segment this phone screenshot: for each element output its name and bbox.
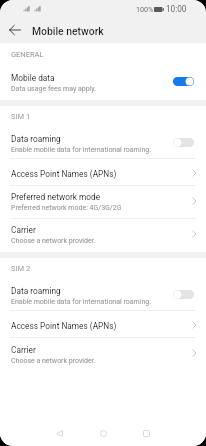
staticText: GENERAL [11, 50, 44, 59]
staticText: Carrier [11, 345, 36, 355]
button[interactable]: Recents [134, 421, 158, 445]
staticText: SIM 1 [11, 112, 31, 121]
button[interactable]: Mobile data on [173, 77, 194, 86]
staticText: Choose a network provider. [11, 237, 96, 245]
button[interactable]: Back [0, 18, 26, 43]
staticText: Enable mobile data for international roa… [11, 298, 152, 306]
button[interactable]: Carrier [0, 338, 206, 372]
staticText: 100% [136, 5, 154, 13]
button[interactable]: Carrier [0, 219, 206, 252]
staticText: Access Point Names (APNs) [11, 321, 117, 331]
button[interactable]: Preferred network mode [0, 186, 206, 219]
button[interactable]: Data roaming [0, 281, 206, 311]
button[interactable]: Access Point Names (APNs) [0, 311, 206, 338]
button[interactable]: Data roaming off [173, 290, 194, 299]
staticText: Preferred network mode: 4G/3G/2G [11, 204, 122, 212]
staticText: Access Point Names (APNs) [11, 169, 117, 179]
staticText: SIM 2 [11, 264, 31, 273]
staticText: Mobile data [11, 73, 55, 83]
button[interactable]: Data roaming off [173, 138, 194, 147]
staticText: Mobile network [32, 25, 104, 37]
button[interactable]: Data roaming [0, 129, 206, 159]
staticText: Preferred network mode [11, 192, 101, 202]
staticText: Data roaming [11, 286, 61, 296]
button[interactable]: Access Point Names (APNs) [0, 159, 206, 186]
staticText: 10:00 [166, 4, 187, 14]
staticText: Data roaming [11, 134, 61, 144]
staticText: Data usage fees may apply. [11, 85, 97, 93]
button[interactable]: Mobile data [0, 67, 206, 100]
button[interactable]: Home [91, 421, 115, 445]
staticText: Carrier [11, 225, 36, 235]
button[interactable]: Back [47, 421, 71, 445]
staticText: Enable mobile data for international roa… [11, 146, 152, 154]
staticText: Choose a network provider. [11, 357, 96, 365]
